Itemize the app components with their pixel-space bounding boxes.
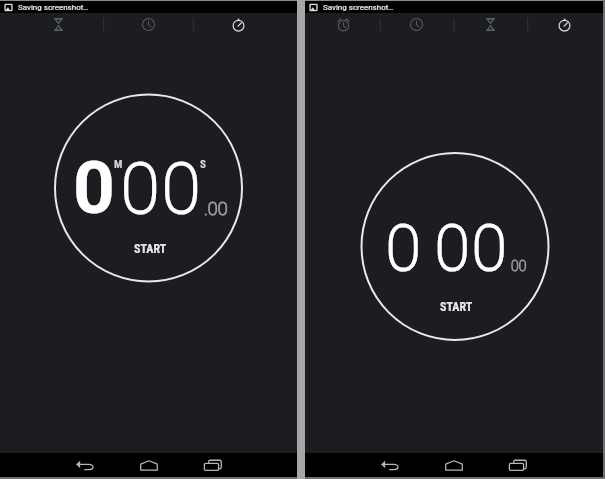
staticText: START <box>440 300 473 314</box>
staticText: 0 <box>435 212 470 286</box>
button[interactable]: Back <box>358 453 422 477</box>
staticText: 0 <box>121 148 160 230</box>
button[interactable]: Stopwatch <box>193 13 283 35</box>
button[interactable]: Recent apps <box>486 453 550 477</box>
button[interactable]: Timer <box>14 13 103 35</box>
button[interactable]: World clock <box>103 13 193 35</box>
button[interactable]: Home <box>422 453 486 477</box>
button[interactable]: World clock <box>380 13 453 35</box>
staticText: S <box>200 158 206 171</box>
staticText: 0 <box>386 212 421 286</box>
button[interactable]: Back <box>53 453 117 477</box>
button[interactable]: Timer <box>453 13 527 35</box>
staticText: 00 <box>511 258 527 274</box>
button[interactable]: Home <box>117 453 181 477</box>
button[interactable]: START <box>120 236 178 256</box>
staticText: .00 <box>204 198 228 219</box>
staticText: 0 <box>472 212 507 286</box>
staticText: M <box>114 158 123 171</box>
staticText: 0 <box>162 148 201 230</box>
button[interactable]: START <box>426 294 484 314</box>
button[interactable]: Stopwatch <box>527 13 601 35</box>
staticText: Saving screenshot… <box>18 3 89 12</box>
button[interactable]: Recent apps <box>181 453 245 477</box>
staticText: START <box>134 242 167 256</box>
button[interactable]: Alarm <box>307 13 380 35</box>
staticText: Saving screenshot… <box>323 3 394 12</box>
staticText: 0 <box>73 145 115 231</box>
